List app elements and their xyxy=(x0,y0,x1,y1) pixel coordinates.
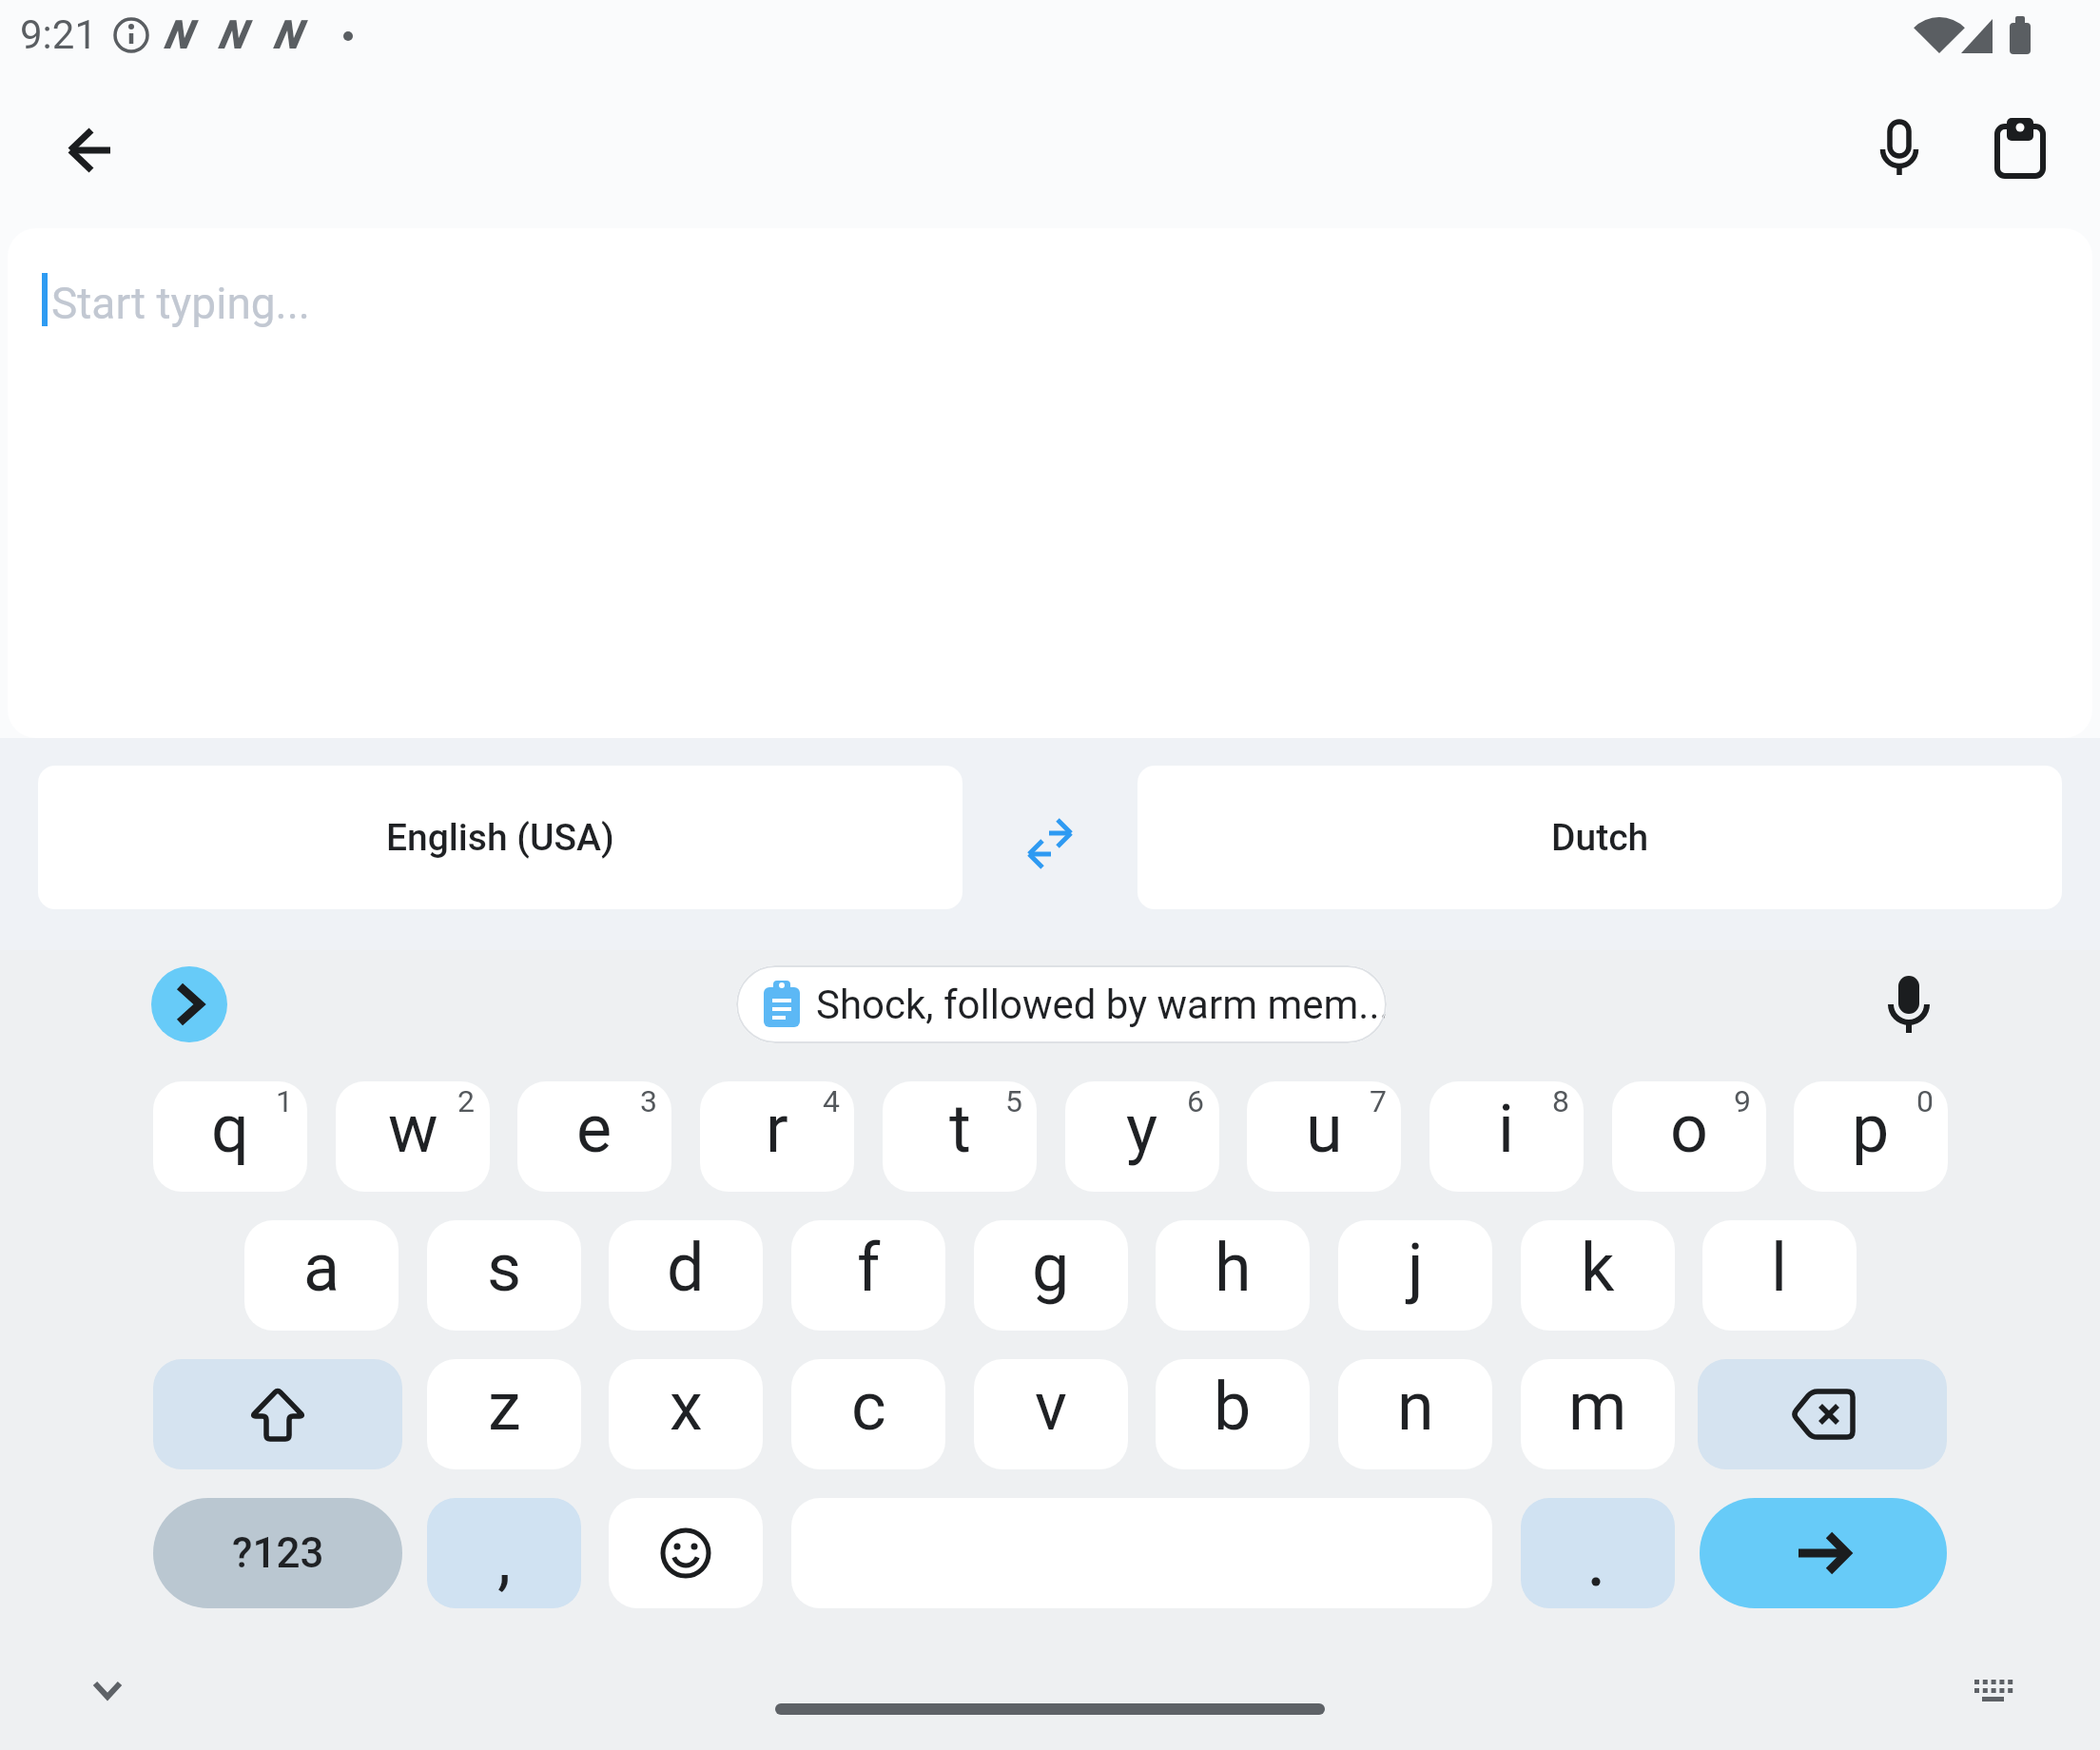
staticText: p xyxy=(1852,1090,1890,1168)
staticText: 9:21 xyxy=(20,11,97,58)
staticText: 7 xyxy=(1370,1083,1387,1119)
staticText: d xyxy=(667,1229,705,1307)
staticText: N xyxy=(273,11,301,58)
staticText: r xyxy=(766,1090,788,1168)
staticText: l xyxy=(1771,1229,1788,1307)
staticText: v xyxy=(1035,1368,1067,1446)
staticText: 3 xyxy=(640,1083,657,1119)
staticText: k xyxy=(1581,1229,1615,1307)
staticText: ?123 xyxy=(232,1528,324,1578)
staticText: N xyxy=(164,11,191,58)
staticText: z xyxy=(488,1368,521,1446)
staticText: t xyxy=(949,1090,971,1168)
staticText: x xyxy=(670,1368,703,1446)
staticText: s xyxy=(487,1229,522,1307)
staticText: g xyxy=(1032,1229,1070,1307)
staticText: b xyxy=(1214,1368,1252,1446)
staticText: 5 xyxy=(1005,1083,1022,1119)
staticText: q xyxy=(211,1090,249,1168)
staticText: English (USA) xyxy=(386,816,614,860)
staticText: n xyxy=(1397,1368,1434,1446)
staticText: , xyxy=(497,1519,512,1599)
staticText: w xyxy=(388,1090,438,1168)
staticText: h xyxy=(1215,1229,1252,1307)
staticText: u xyxy=(1306,1090,1343,1168)
staticText: 0 xyxy=(1916,1083,1934,1119)
staticText: 1 xyxy=(276,1083,293,1119)
staticText: e xyxy=(576,1090,612,1168)
staticText: 8 xyxy=(1552,1083,1569,1119)
staticText: 9 xyxy=(1734,1083,1751,1119)
staticText: N xyxy=(218,11,245,58)
staticText: o xyxy=(1670,1090,1708,1168)
staticText: a xyxy=(303,1229,340,1307)
staticText: 4 xyxy=(823,1083,840,1119)
staticText: 6 xyxy=(1187,1083,1204,1119)
staticText: Shock, followed by warm mem... xyxy=(816,982,1387,1028)
staticText: y xyxy=(1126,1090,1158,1168)
staticText: 2 xyxy=(457,1083,475,1119)
staticText: Dutch xyxy=(1551,816,1649,860)
staticText: i xyxy=(1498,1090,1515,1168)
staticText: j xyxy=(1408,1229,1424,1307)
staticText: f xyxy=(857,1229,881,1307)
staticText: m xyxy=(1568,1368,1627,1446)
staticText: c xyxy=(851,1368,886,1446)
staticText: Start typing... xyxy=(51,278,311,329)
